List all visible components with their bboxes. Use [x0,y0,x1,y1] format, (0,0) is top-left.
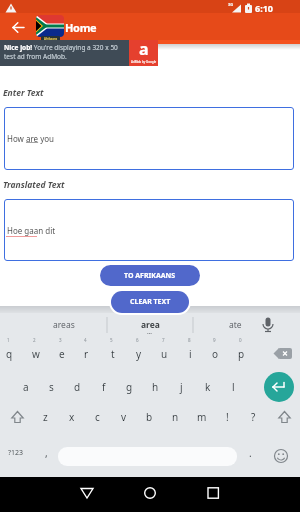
button[interactable]: , [34,437,58,469]
button[interactable]: Nice job! You're displaying a 320 x 50 t… [0,40,158,66]
button[interactable]: z [33,404,58,430]
staticText: v [121,410,127,424]
button[interactable]: m [189,404,214,430]
button[interactable]: j [169,374,194,400]
button[interactable]: x [59,404,84,430]
button[interactable] [75,481,99,505]
button[interactable]: t [100,341,125,367]
staticText: How are you [7,133,55,144]
staticText: a [23,380,29,394]
staticText: ? [251,410,256,424]
staticText: Enter Text [3,87,44,99]
staticText: j [180,380,183,394]
staticText: z [43,410,48,424]
staticText: 5 [110,337,113,343]
staticText: 3 [59,337,62,343]
button[interactable]: y [126,341,151,367]
staticText: area [141,319,160,331]
button[interactable]: ? [241,404,266,430]
staticText: o [212,347,219,361]
staticText: n [172,410,179,424]
staticText: t [111,347,115,361]
button[interactable] [272,404,297,430]
staticText: ate [229,319,242,331]
button[interactable] [6,18,28,38]
staticText: Hoe gaan dit [7,225,56,236]
staticText: f [102,380,106,394]
staticText: TO AFRIKAANS [124,271,176,281]
button[interactable]: TO AFRIKAANS [100,265,200,286]
button[interactable]: b [137,404,162,430]
button[interactable]: CLEAR TEXT [109,289,191,315]
button[interactable]: . [238,437,262,469]
button[interactable]: s [39,374,64,400]
button[interactable]: l [221,374,246,400]
button[interactable] [201,481,225,505]
staticText: 4 [84,337,87,343]
button[interactable]: k [195,374,220,400]
button[interactable]: e [49,341,74,367]
staticText: 6:10 [255,2,273,14]
staticText: CLEAR TEXT [130,297,171,307]
button[interactable]: v [111,404,136,430]
button[interactable]: ! [215,404,240,430]
staticText: 7 [162,337,165,343]
staticText: p [238,347,245,361]
button[interactable] [272,341,297,367]
button[interactable]: n [163,404,188,430]
button[interactable]: a [13,374,38,400]
button[interactable]: d [65,374,90,400]
staticText: Translated Text [3,179,65,191]
staticText: Home [65,20,97,35]
staticText: k [205,380,211,394]
staticText: AdMob by Google [131,60,157,64]
staticText: . [249,446,252,460]
button[interactable]: areas [20,313,107,337]
staticText: c [95,410,100,424]
button[interactable] [264,372,294,402]
button[interactable]: w [23,341,48,367]
staticText: m [197,410,207,424]
staticText: r [84,347,89,361]
staticText: ! [226,410,229,424]
button[interactable]: q [0,341,22,367]
button[interactable] [5,404,30,430]
button[interactable] [138,481,162,505]
button[interactable]: u [152,341,177,367]
button[interactable]: o [203,341,228,367]
button[interactable]: area [115,313,185,337]
button[interactable]: ?123 [2,437,30,469]
button[interactable]: i [178,341,203,367]
button[interactable]: ate [200,313,270,337]
staticText: Afrikaans [44,37,58,41]
staticText: i [189,347,192,361]
staticText: l [232,380,235,394]
staticText: b [146,410,153,424]
staticText: x [69,410,75,424]
staticText: 6 [136,337,139,343]
staticText: areas [53,319,75,331]
staticText: 1 [7,337,10,343]
staticText: 2 [33,337,36,343]
button[interactable]: Hoe gaan dit [4,199,294,261]
staticText: u [161,347,168,361]
staticText: h [152,380,159,394]
staticText: 3G [228,2,234,7]
staticText: y [136,347,142,361]
button[interactable] [268,441,294,467]
staticText: ?123 [8,448,24,458]
staticText: d [74,380,81,394]
button[interactable]: c [85,404,110,430]
staticText: Nice job! You're displaying a 320 x 50 t… [4,43,128,61]
staticText: s [49,380,54,394]
button[interactable]: f [91,374,116,400]
staticText: q [6,347,13,361]
button[interactable] [36,15,64,37]
button[interactable]: p [229,341,254,367]
staticText: a [139,38,149,60]
button[interactable]: r [74,341,99,367]
button[interactable]: How are you [4,107,294,170]
button[interactable]: h [143,374,168,400]
button[interactable]: g [117,374,142,400]
